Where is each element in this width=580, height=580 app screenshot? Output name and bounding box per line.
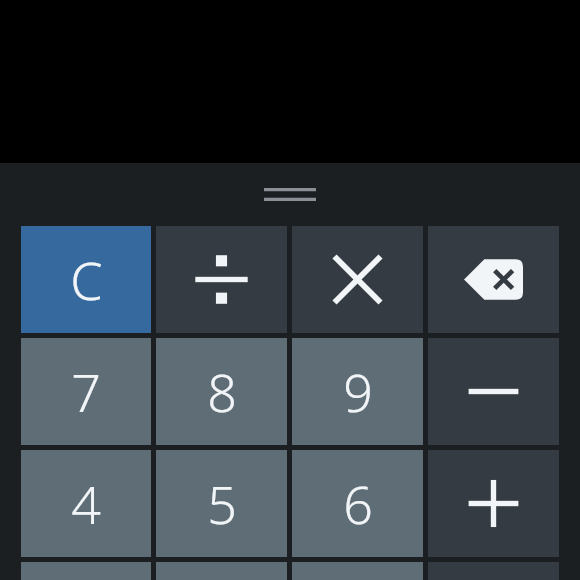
button[interactable]: 4 bbox=[21, 450, 151, 557]
staticText: 5 bbox=[207, 468, 237, 539]
button[interactable]: Backspace bbox=[428, 226, 559, 333]
staticText: 7 bbox=[71, 356, 101, 427]
button[interactable]: Multiply bbox=[292, 226, 423, 333]
button[interactable]: 6 bbox=[292, 450, 423, 557]
button[interactable]: Plus bbox=[428, 450, 559, 557]
button[interactable]: C bbox=[21, 226, 151, 333]
staticText: 8 bbox=[207, 356, 237, 427]
button[interactable]: 9 bbox=[292, 338, 423, 445]
button[interactable]: Drag handle bbox=[0, 163, 580, 226]
staticText: 9 bbox=[343, 356, 373, 427]
staticText: C bbox=[70, 244, 103, 315]
button[interactable]: Minus bbox=[428, 338, 559, 445]
button[interactable]: 5 bbox=[156, 450, 287, 557]
staticText: 4 bbox=[71, 468, 101, 539]
button[interactable]: Divide bbox=[156, 226, 287, 333]
staticText: 6 bbox=[343, 468, 373, 539]
button[interactable]: 7 bbox=[21, 338, 151, 445]
button[interactable]: 8 bbox=[156, 338, 287, 445]
